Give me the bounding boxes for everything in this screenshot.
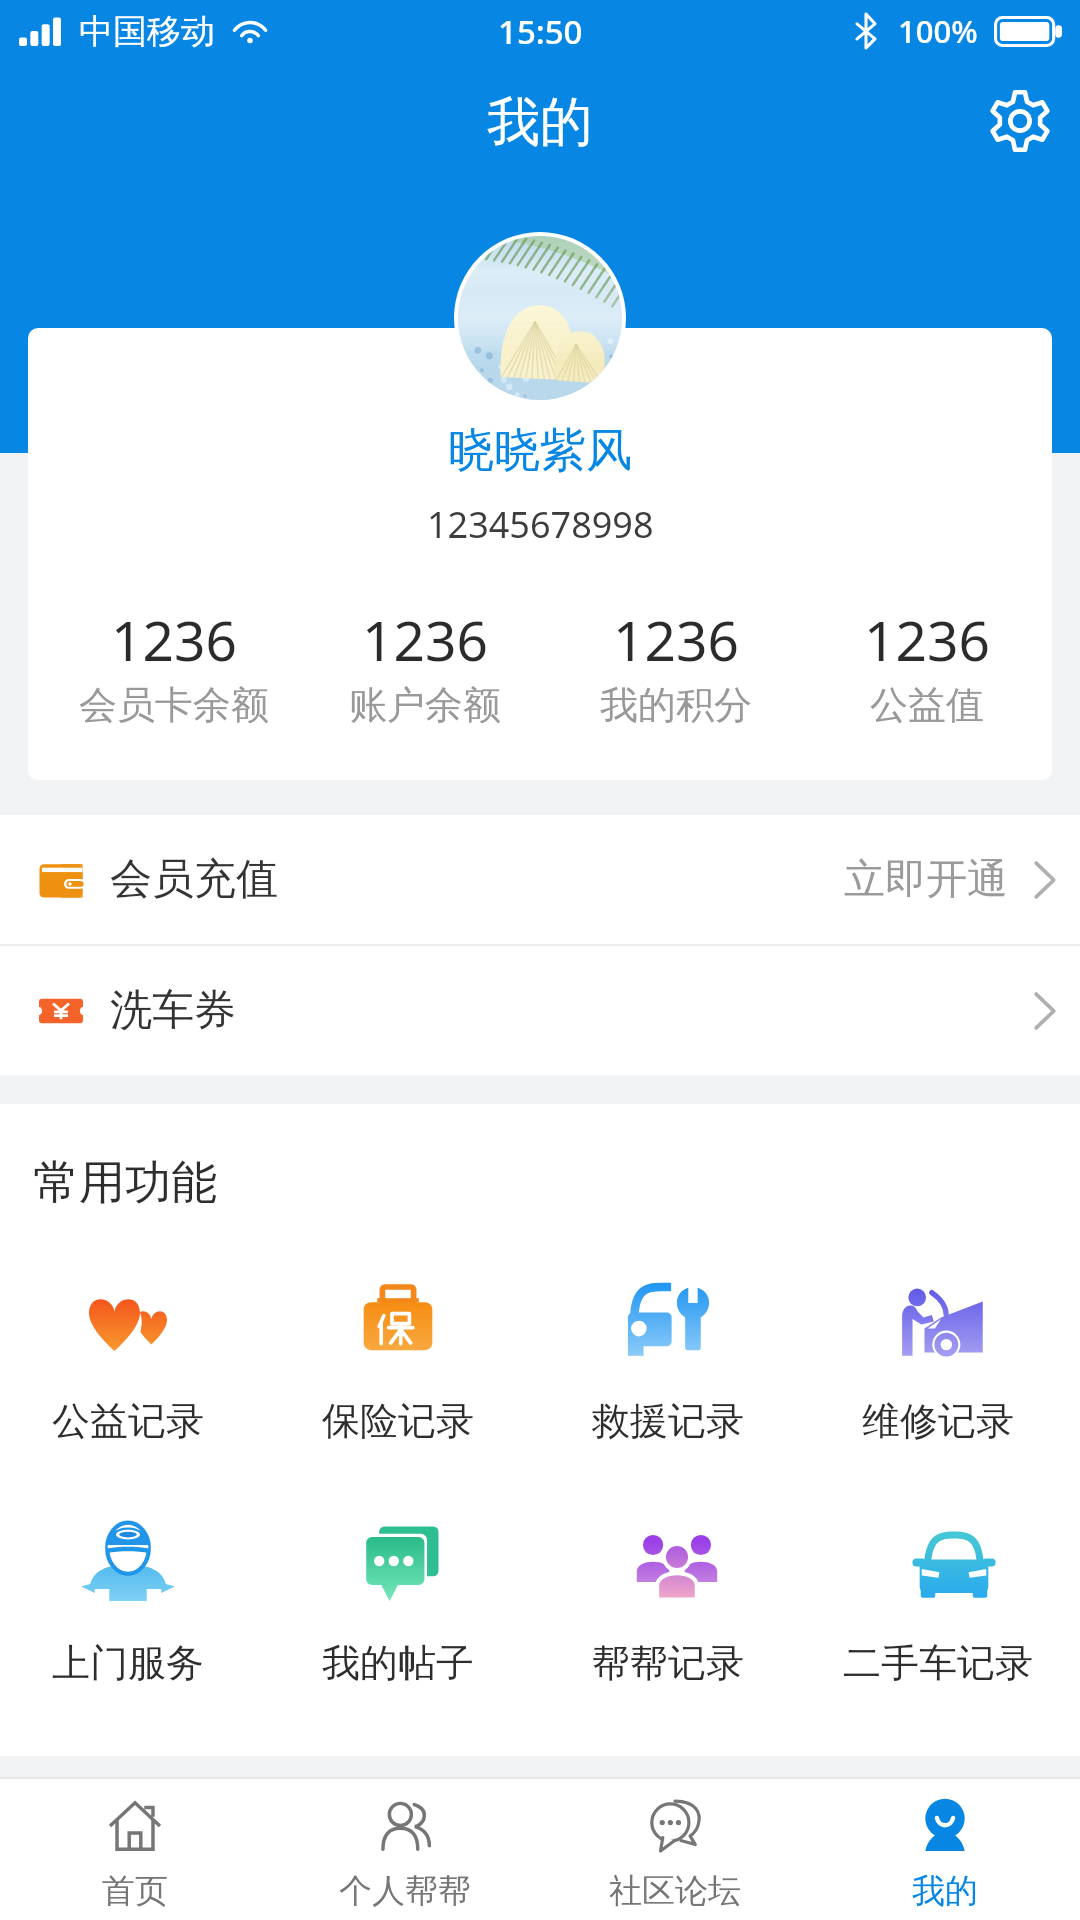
- staticText: 我的积分: [600, 681, 752, 729]
- button[interactable]: 社区论坛: [540, 1797, 810, 1912]
- button[interactable]: 1236: [801, 602, 1052, 729]
- staticText: 100%: [898, 10, 978, 52]
- staticText: 救援记录: [592, 1397, 744, 1445]
- staticText: 公益值: [870, 681, 984, 729]
- staticText: 中国移动: [79, 10, 215, 53]
- button[interactable]: 帮帮记录: [533, 1521, 803, 1687]
- staticText: 公益记录: [52, 1397, 204, 1445]
- staticText: 1236: [111, 602, 237, 677]
- staticText: 社区论坛: [609, 1870, 741, 1912]
- button[interactable]: 1236: [49, 602, 299, 729]
- staticText: 1236: [613, 602, 739, 677]
- staticText: 帮帮记录: [592, 1639, 744, 1687]
- staticText: 会员充值: [110, 853, 278, 906]
- button[interactable]: 1236: [550, 602, 801, 729]
- staticText: 个人帮帮: [339, 1870, 471, 1912]
- staticText: 立即开通: [844, 854, 1008, 906]
- button[interactable]: 公益记录: [0, 1279, 263, 1445]
- staticText: 晓晓紫风: [448, 422, 632, 480]
- staticText: 账户余额: [349, 681, 501, 729]
- button[interactable]: 洗车券: [0, 946, 1080, 1075]
- staticText: 我的: [912, 1870, 978, 1912]
- staticText: 维修记录: [862, 1397, 1014, 1445]
- button[interactable]: 会员充值: [0, 815, 1080, 944]
- button[interactable]: Settings: [981, 82, 1059, 160]
- staticText: 常用功能: [33, 1154, 217, 1212]
- button[interactable]: 上门服务: [0, 1521, 263, 1687]
- staticText: 会员卡余额: [79, 681, 269, 729]
- button[interactable]: 1236: [299, 602, 550, 729]
- button[interactable]: 首页: [0, 1797, 270, 1912]
- staticText: 二手车记录: [843, 1639, 1033, 1687]
- staticText: 15:50: [498, 9, 583, 54]
- button[interactable]: 维修记录: [803, 1279, 1073, 1445]
- button[interactable]: Avatar: [458, 236, 622, 400]
- staticText: 1236: [362, 602, 488, 677]
- staticText: 12345678998: [427, 500, 654, 549]
- staticText: 洗车券: [110, 984, 236, 1037]
- staticText: 我的帖子: [322, 1639, 474, 1687]
- button[interactable]: 二手车记录: [803, 1521, 1073, 1687]
- staticText: 首页: [102, 1870, 168, 1912]
- staticText: 保险记录: [322, 1397, 474, 1445]
- button[interactable]: 我的: [810, 1797, 1080, 1912]
- staticText: 我的: [487, 89, 593, 156]
- button[interactable]: 保险记录: [263, 1279, 533, 1445]
- staticText: 上门服务: [52, 1639, 204, 1687]
- staticText: 1236: [864, 602, 990, 677]
- button[interactable]: 个人帮帮: [270, 1797, 540, 1912]
- button[interactable]: 救援记录: [533, 1279, 803, 1445]
- button[interactable]: 我的帖子: [263, 1521, 533, 1687]
